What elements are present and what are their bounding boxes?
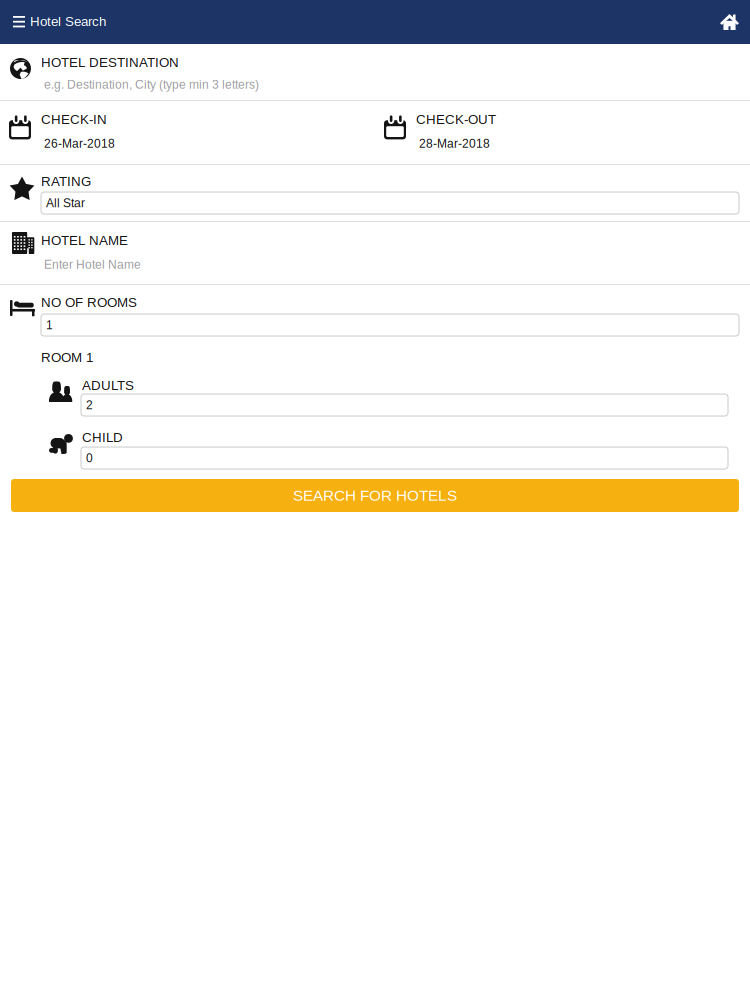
button[interactable]: All Star — [41, 192, 739, 214]
staticText: 0 — [86, 451, 93, 465]
staticText: ADULTS — [82, 378, 134, 393]
staticText: Enter Hotel Name — [44, 258, 141, 271]
button[interactable]: SEARCH FOR HOTELS — [11, 479, 739, 512]
staticText: HOTEL DESTINATION — [41, 55, 179, 70]
button[interactable]: 1 — [41, 314, 739, 336]
staticText: 1 — [46, 318, 53, 332]
staticText: CHECK-OUT — [416, 112, 496, 127]
staticText: 26-Mar-2018 — [44, 137, 115, 150]
button[interactable]: HOTEL DESTINATION — [0, 44, 750, 100]
staticText: SEARCH FOR HOTELS — [293, 487, 457, 504]
button[interactable]: CHECK-OUT — [375, 101, 740, 164]
staticText: e.g. Destination, City (type min 3 lette… — [44, 78, 259, 91]
staticText: NO OF ROOMS — [41, 295, 137, 310]
button[interactable]: 0 — [81, 447, 728, 469]
staticText: 28-Mar-2018 — [419, 137, 490, 150]
staticText: Hotel Search — [30, 14, 106, 29]
staticText: ROOM 1 — [41, 350, 93, 365]
button[interactable]: 2 — [81, 394, 728, 416]
staticText: CHECK-IN — [41, 112, 107, 127]
button[interactable]: Hotel Search — [0, 0, 115, 43]
staticText: RATING — [41, 174, 91, 189]
staticText: 2 — [86, 398, 93, 412]
button[interactable]: Home — [700, 0, 750, 43]
staticText: CHILD — [82, 430, 123, 445]
staticText: All Star — [46, 196, 85, 210]
button[interactable]: HOTEL NAME — [0, 222, 750, 284]
button[interactable]: CHECK-IN — [0, 101, 375, 164]
staticText: HOTEL NAME — [41, 233, 128, 248]
